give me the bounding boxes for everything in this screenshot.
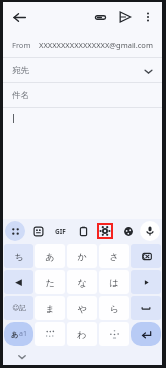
- staticText: な: [77, 277, 87, 288]
- staticText: a1: [19, 329, 27, 339]
- button[interactable]: さ: [99, 244, 129, 268]
- staticText: ま: [45, 303, 55, 314]
- button[interactable]: Themes: [118, 221, 138, 241]
- button[interactable]: か: [67, 244, 97, 268]
- button[interactable]: Expand recipients: [140, 63, 156, 79]
- button[interactable]: Hide keyboard: [16, 351, 28, 363]
- button[interactable]: Space: [131, 296, 161, 320]
- staticText: ら: [109, 303, 119, 314]
- button[interactable]: ま: [35, 296, 65, 320]
- button[interactable]: Keyboard settings: [95, 221, 115, 241]
- staticText: ☺記: [12, 304, 26, 312]
- button[interactable]: Cursor right: [131, 270, 161, 294]
- button[interactable]: From: [3, 32, 162, 58]
- staticText: From: [12, 40, 31, 50]
- button[interactable]: Send: [115, 7, 135, 27]
- button[interactable]: あ: [35, 244, 65, 268]
- staticText: た: [45, 277, 55, 288]
- button[interactable]: ら: [99, 296, 129, 320]
- staticText: は: [109, 277, 119, 288]
- button[interactable]: ち: [4, 244, 33, 268]
- button[interactable]: あ: [4, 322, 33, 346]
- button[interactable]: Enter: [131, 322, 161, 346]
- button[interactable]: わ: [67, 322, 97, 346]
- button[interactable]: は: [99, 270, 129, 294]
- button[interactable]: More options: [138, 7, 158, 27]
- staticText: や: [77, 303, 87, 314]
- staticText: ◀: [15, 277, 22, 287]
- button[interactable]: や: [67, 296, 97, 320]
- staticText: GIF: [55, 227, 66, 236]
- staticText: ち: [14, 251, 24, 262]
- staticText: XXXXXXXXXXXXXXXX@gmail.com: [39, 40, 153, 50]
- button[interactable]: GIF: [50, 221, 70, 241]
- staticText: 宛先: [12, 65, 29, 76]
- button[interactable]: 宛先: [3, 58, 162, 83]
- button[interactable]: Emoticons: [35, 322, 65, 346]
- button[interactable]: な: [67, 270, 97, 294]
- button[interactable]: 件名: [3, 83, 162, 108]
- button[interactable]: ◀: [4, 270, 33, 294]
- button[interactable]: Voice input: [140, 221, 160, 241]
- staticText: 件名: [12, 90, 29, 101]
- button[interactable]: ☺記: [4, 296, 33, 320]
- staticText: か: [77, 251, 87, 262]
- staticText: あ: [11, 330, 19, 339]
- button[interactable]: [3, 108, 162, 219]
- button[interactable]: Attach file: [90, 7, 110, 27]
- staticText: わ: [77, 329, 87, 340]
- button[interactable]: Apps: [5, 221, 25, 241]
- staticText: さ: [109, 251, 119, 262]
- button[interactable]: Backspace: [131, 244, 161, 268]
- button[interactable]: Clipboard: [73, 221, 93, 241]
- button[interactable]: Back: [8, 6, 30, 28]
- button[interactable]: Punctuation: [99, 322, 129, 346]
- button[interactable]: た: [35, 270, 65, 294]
- button[interactable]: Stickers: [28, 221, 48, 241]
- staticText: あ: [45, 251, 55, 262]
